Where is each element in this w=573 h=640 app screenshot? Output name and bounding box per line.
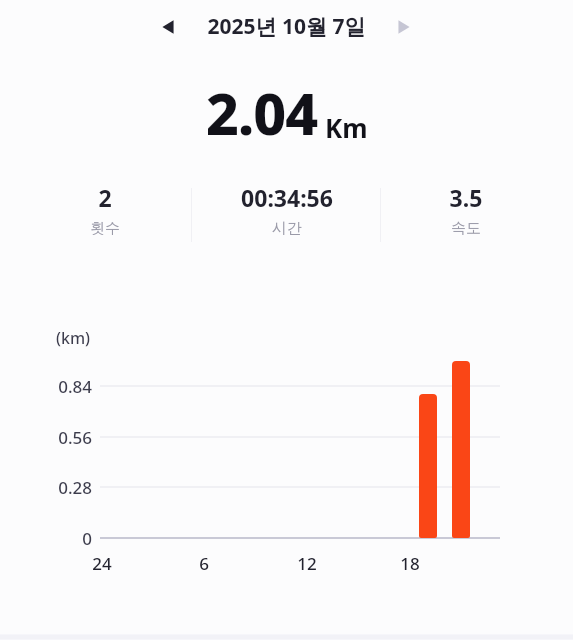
- staticText: 12: [277, 552, 337, 575]
- staticText: 18: [380, 552, 440, 575]
- staticText: 0.56: [40, 426, 92, 449]
- staticText: 2.04: [206, 74, 318, 152]
- staticText: 속도: [386, 219, 546, 238]
- staticText: 횟수: [25, 219, 185, 238]
- button[interactable]: Next day: [388, 11, 420, 43]
- staticText: 0.28: [40, 476, 92, 499]
- staticText: Km: [325, 110, 368, 145]
- button[interactable]: Distance bar: [452, 361, 470, 538]
- staticText: 24: [72, 552, 132, 575]
- staticText: 0: [40, 527, 92, 550]
- button[interactable]: 00:34:56: [207, 180, 367, 240]
- button[interactable]: 3.5: [386, 180, 546, 240]
- staticText: 6: [174, 552, 234, 575]
- button[interactable]: 2: [25, 180, 185, 240]
- staticText: 2: [25, 182, 185, 213]
- staticText: 시간: [207, 219, 367, 238]
- staticText: (km): [56, 327, 91, 349]
- staticText: 0.84: [40, 375, 92, 398]
- staticText: 00:34:56: [207, 182, 367, 213]
- button[interactable]: Distance bar: [419, 394, 437, 538]
- staticText: 2025년 10월 7일: [207, 12, 366, 41]
- button[interactable]: Previous day: [152, 11, 184, 43]
- staticText: 3.5: [386, 182, 546, 213]
